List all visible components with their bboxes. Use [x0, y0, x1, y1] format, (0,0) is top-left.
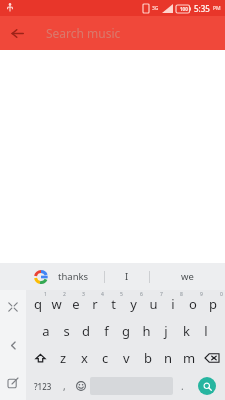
- staticText: e: [72, 295, 80, 313]
- button[interactable]: g: [116, 317, 136, 344]
- staticText: 4: [101, 291, 104, 298]
- staticText: a: [42, 322, 50, 340]
- staticText: m: [183, 349, 196, 367]
- staticText: l: [204, 322, 208, 340]
- button[interactable]: ?123: [29, 372, 56, 400]
- button[interactable]: d: [76, 317, 96, 344]
- staticText: y: [130, 295, 137, 313]
- button[interactable]: j: [156, 317, 176, 344]
- button[interactable]: Previous: [3, 335, 23, 355]
- button[interactable]: z: [52, 344, 74, 372]
- staticText: s: [63, 322, 70, 340]
- staticText: 100: [180, 6, 188, 12]
- staticText: h: [142, 322, 151, 340]
- staticText: PM: [213, 5, 221, 12]
- button[interactable]: h: [136, 317, 156, 344]
- button[interactable]: Floating keyboard: [3, 373, 23, 393]
- staticText: ,: [63, 379, 66, 393]
- staticText: 5: [120, 291, 123, 298]
- button[interactable]: x: [74, 344, 95, 372]
- staticText: r: [92, 295, 98, 313]
- staticText: t: [111, 295, 116, 313]
- staticText: n: [164, 349, 173, 367]
- staticText: 0: [220, 291, 223, 298]
- button[interactable]: Backspace: [200, 344, 223, 372]
- staticText: b: [144, 349, 152, 367]
- button[interactable]: k: [176, 317, 196, 344]
- button[interactable]: r: [85, 290, 104, 317]
- staticText: f: [104, 322, 109, 340]
- staticText: Search music: [46, 25, 121, 41]
- button[interactable]: we: [150, 263, 225, 290]
- staticText: 6: [140, 291, 143, 298]
- staticText: 1: [44, 291, 47, 298]
- button[interactable]: a: [35, 317, 56, 344]
- button[interactable]: Resize keyboard: [3, 297, 23, 317]
- button[interactable]: thanks: [58, 263, 104, 290]
- button[interactable]: w: [47, 290, 66, 317]
- staticText: w: [51, 295, 62, 313]
- button[interactable]: b: [137, 344, 158, 372]
- staticText: q: [34, 295, 42, 313]
- button[interactable]: Shift: [28, 344, 52, 372]
- button[interactable]: f: [96, 317, 116, 344]
- button[interactable]: l: [196, 317, 216, 344]
- staticText: .: [181, 379, 184, 393]
- staticText: d: [82, 322, 90, 340]
- staticText: g: [122, 322, 130, 340]
- button[interactable]: Emoji: [72, 372, 90, 400]
- staticText: 7: [160, 291, 163, 298]
- button[interactable]: i: [163, 290, 183, 317]
- button[interactable]: o: [183, 290, 203, 317]
- staticText: o: [189, 295, 197, 313]
- button[interactable]: Comma: [56, 372, 72, 400]
- button[interactable]: t: [104, 290, 123, 317]
- button[interactable]: c: [95, 344, 116, 372]
- staticText: u: [149, 295, 158, 313]
- staticText: 3: [82, 291, 85, 298]
- button[interactable]: m: [179, 344, 200, 372]
- staticText: j: [164, 322, 168, 340]
- staticText: z: [60, 349, 67, 367]
- staticText: we: [181, 270, 194, 283]
- staticText: i: [171, 295, 175, 313]
- staticText: 3G: [152, 5, 159, 12]
- button[interactable]: v: [116, 344, 137, 372]
- button[interactable]: u: [143, 290, 163, 317]
- staticText: ?123: [34, 381, 52, 392]
- button[interactable]: Search: [191, 372, 222, 400]
- button[interactable]: y: [123, 290, 143, 317]
- staticText: x: [81, 349, 88, 367]
- staticText: p: [209, 295, 217, 313]
- staticText: I: [125, 270, 129, 283]
- staticText: k: [183, 322, 190, 340]
- button[interactable]: q: [28, 290, 47, 317]
- button[interactable]: s: [56, 317, 76, 344]
- staticText: 2: [63, 291, 66, 298]
- staticText: 8: [180, 291, 183, 298]
- button[interactable]: e: [66, 290, 85, 317]
- staticText: c: [102, 349, 109, 367]
- staticText: 5:35: [194, 3, 210, 14]
- staticText: v: [123, 349, 130, 367]
- button[interactable]: Back: [0, 16, 34, 50]
- button[interactable]: n: [158, 344, 179, 372]
- staticText: thanks: [58, 270, 89, 283]
- staticText: 9: [200, 291, 203, 298]
- button[interactable]: I: [105, 263, 149, 290]
- button[interactable]: p: [203, 290, 223, 317]
- button[interactable]: Search music: [46, 16, 225, 50]
- button[interactable]: Period: [173, 372, 191, 400]
